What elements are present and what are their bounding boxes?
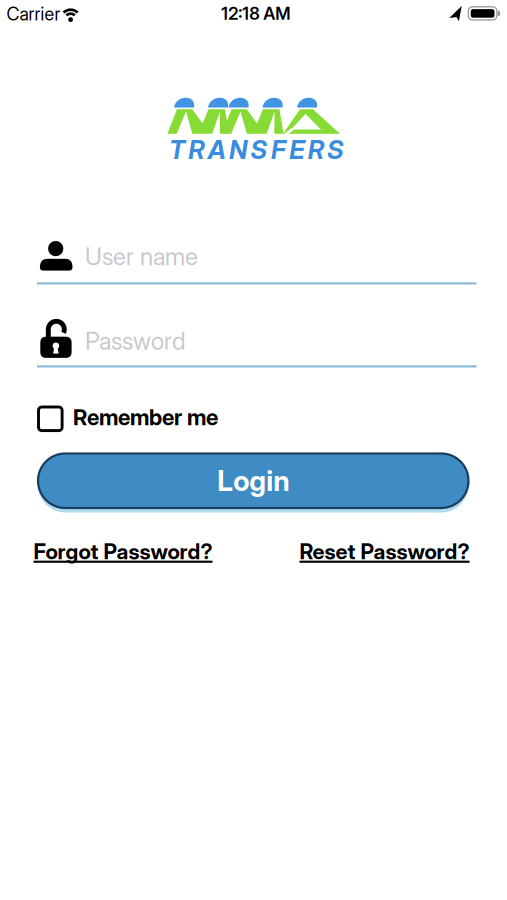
button[interactable]: Password bbox=[37, 318, 476, 367]
staticText: User name bbox=[85, 242, 198, 271]
staticText: Reset Password? bbox=[299, 538, 469, 564]
staticText: E bbox=[289, 134, 304, 165]
staticText: A bbox=[208, 134, 226, 165]
button[interactable]: User name bbox=[37, 239, 476, 284]
staticText: S bbox=[250, 134, 267, 165]
button[interactable]: Remember me bbox=[38, 405, 218, 432]
staticText: 12:18 AM bbox=[221, 3, 290, 24]
staticText: R bbox=[308, 134, 324, 165]
button[interactable]: Login bbox=[38, 453, 468, 508]
staticText: R bbox=[188, 134, 204, 165]
button[interactable]: Reset Password? bbox=[299, 538, 469, 564]
staticText: F bbox=[271, 134, 286, 165]
staticText: Password bbox=[85, 326, 186, 355]
staticText: N bbox=[229, 134, 247, 165]
staticText: Carrier bbox=[6, 3, 60, 25]
staticText: S bbox=[327, 134, 344, 165]
staticText: Login bbox=[217, 464, 289, 498]
button[interactable]: Forgot Password? bbox=[33, 538, 212, 564]
staticText: Remember me bbox=[73, 404, 218, 431]
staticText: T bbox=[169, 134, 185, 165]
staticText: Forgot Password? bbox=[33, 538, 212, 564]
